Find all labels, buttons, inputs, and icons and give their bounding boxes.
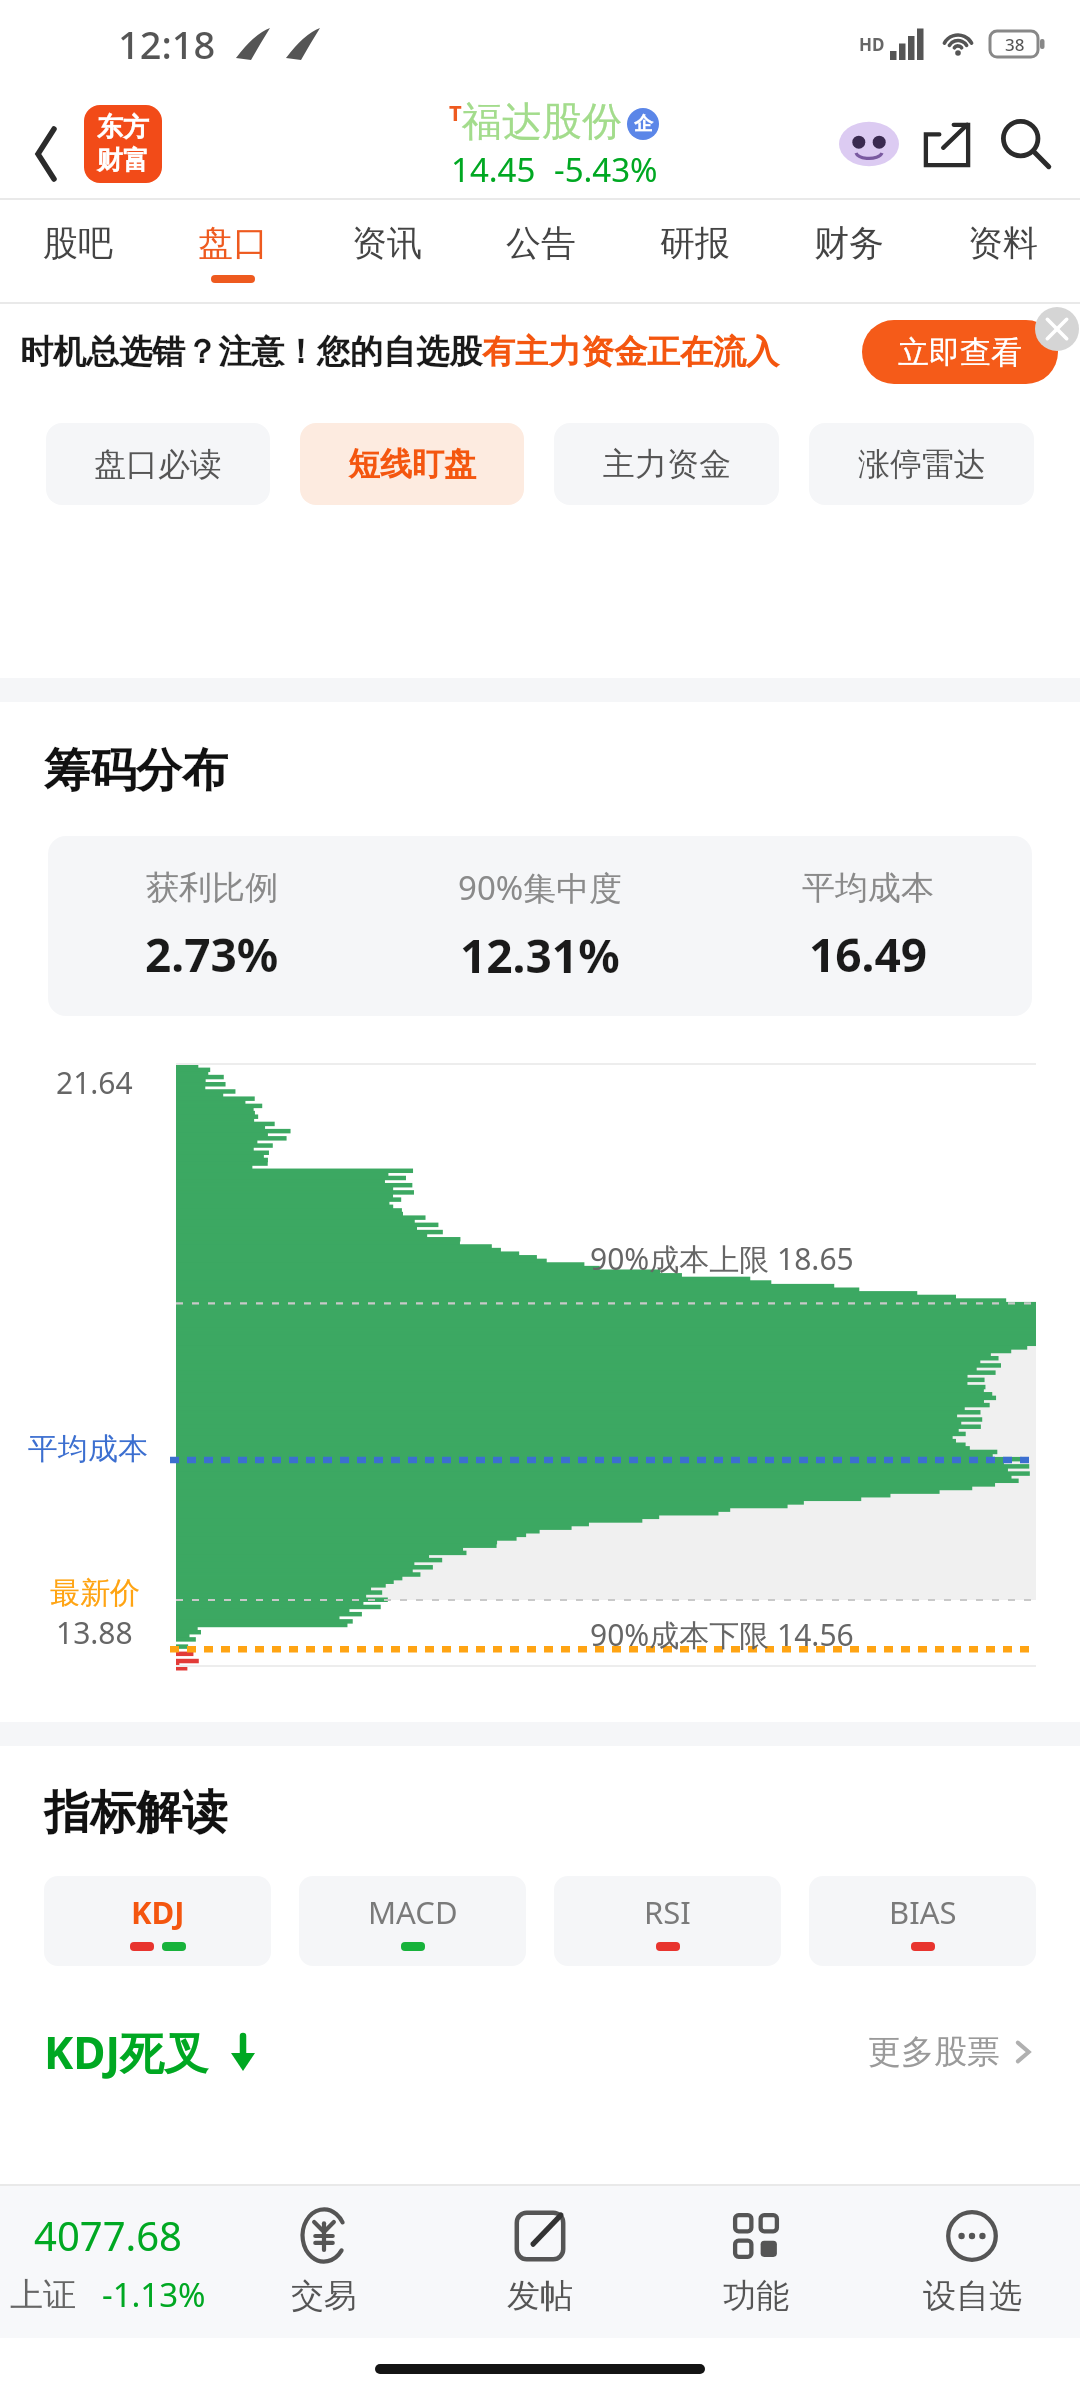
- staticText: 主力资金: [603, 444, 731, 484]
- staticText: MACD: [368, 1891, 458, 1933]
- staticText: 交易: [291, 2275, 357, 2317]
- button[interactable]: 盘口必读: [46, 423, 270, 505]
- staticText: 时机总选错？注意！您的自选股: [20, 331, 482, 373]
- button[interactable]: 公告: [464, 200, 618, 304]
- button[interactable]: Share: [908, 105, 986, 183]
- staticText: 14.45: [451, 147, 536, 192]
- staticText: 功能: [723, 2275, 789, 2317]
- button[interactable]: Profile: [830, 105, 908, 183]
- staticText: 盘口: [198, 221, 268, 265]
- staticText: 资料: [968, 221, 1038, 265]
- staticText: KDJ: [131, 1891, 185, 1933]
- staticText: 16.49: [809, 923, 928, 986]
- button[interactable]: 4077.68: [0, 2186, 216, 2338]
- button[interactable]: 资料: [926, 200, 1080, 304]
- button[interactable]: 研报: [618, 200, 772, 304]
- button[interactable]: Back: [12, 108, 84, 180]
- staticText: 福达股份: [462, 96, 622, 146]
- staticText: 东方: [97, 111, 149, 144]
- button[interactable]: East Money Home: [84, 105, 162, 183]
- button[interactable]: Functions: [648, 2186, 864, 2338]
- button[interactable]: 主力资金: [554, 423, 779, 505]
- staticText: 指标解读: [44, 1784, 228, 1842]
- staticText: 研报: [660, 221, 730, 265]
- button[interactable]: 立即查看: [862, 320, 1058, 384]
- staticText: -5.43%: [554, 147, 658, 192]
- button[interactable]: 股吧: [0, 200, 155, 304]
- button[interactable]: 资讯: [310, 200, 464, 304]
- button[interactable]: 短线盯盘: [300, 423, 524, 505]
- staticText: 股吧: [43, 221, 113, 265]
- staticText: 12.31%: [460, 924, 620, 987]
- staticText: 获利比例: [146, 867, 278, 909]
- staticText: 90%成本下限 14.56: [590, 1614, 854, 1655]
- staticText: 有主力资金正在流入: [482, 331, 779, 373]
- staticText: 最新价: [50, 1574, 140, 1612]
- staticText: T: [449, 97, 462, 127]
- staticText: 立即查看: [898, 333, 1022, 372]
- staticText: 4077.68: [34, 2208, 182, 2262]
- button[interactable]: KDJ死叉: [44, 2004, 1036, 2100]
- button[interactable]: Settings: [864, 2186, 1080, 2338]
- button[interactable]: Post: [432, 2186, 648, 2338]
- button[interactable]: 涨停雷达: [809, 423, 1034, 505]
- staticText: 涨停雷达: [858, 444, 986, 484]
- staticText: 21.64: [56, 1062, 133, 1103]
- button[interactable]: Search: [986, 105, 1064, 183]
- button[interactable]: Trade: [216, 2186, 432, 2338]
- staticText: 13.88: [56, 1612, 133, 1653]
- staticText: 平均成本: [28, 1430, 148, 1468]
- staticText: 发帖: [507, 2275, 573, 2317]
- button[interactable]: 盘口: [155, 200, 310, 304]
- staticText: RSI: [644, 1891, 691, 1933]
- staticText: 38: [1005, 33, 1025, 56]
- staticText: 90%成本上限 18.65: [590, 1238, 854, 1279]
- staticText: 2.73%: [145, 923, 279, 986]
- staticText: 公告: [506, 221, 576, 265]
- staticText: 盘口必读: [94, 444, 222, 484]
- staticText: 财富: [97, 144, 149, 177]
- button[interactable]: KDJ: [44, 1876, 271, 1966]
- staticText: 更多股票: [868, 2031, 1000, 2073]
- staticText: 企: [634, 112, 653, 136]
- staticText: 上证: [10, 2274, 76, 2316]
- staticText: 90%集中度: [458, 865, 623, 910]
- staticText: 筹码分布: [44, 742, 228, 800]
- button[interactable]: RSI: [554, 1876, 781, 1966]
- button[interactable]: 财务: [772, 200, 926, 304]
- staticText: 平均成本: [802, 867, 934, 909]
- staticText: KDJ死叉: [44, 2022, 208, 2082]
- staticText: -1.13%: [102, 2272, 206, 2317]
- staticText: 12:18: [118, 18, 216, 70]
- staticText: 设自选: [923, 2275, 1022, 2317]
- staticText: 资讯: [352, 221, 422, 265]
- staticText: BIAS: [889, 1891, 957, 1933]
- staticText: HD: [859, 33, 885, 56]
- button[interactable]: Close banner: [1034, 306, 1080, 352]
- staticText: 财务: [814, 221, 884, 265]
- button[interactable]: BIAS: [809, 1876, 1036, 1966]
- staticText: 短线盯盘: [348, 444, 476, 484]
- button[interactable]: MACD: [299, 1876, 526, 1966]
